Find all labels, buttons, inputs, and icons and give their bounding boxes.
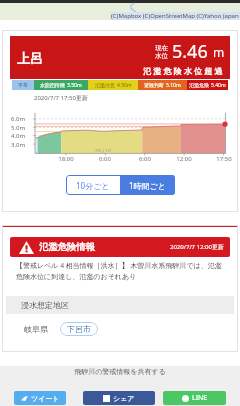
staticText: 2020/7/7 12:00更新 xyxy=(170,243,224,251)
staticText: 5.0m xyxy=(11,124,26,132)
staticText: 飛騨川の警戒情報を共有する xyxy=(0,367,240,376)
staticText: 平常 xyxy=(18,82,28,88)
staticText: 10分ごと xyxy=(76,180,110,191)
staticText: LINE xyxy=(192,393,208,403)
staticText: 下呂市 xyxy=(67,324,91,334)
staticText: 17:50 xyxy=(214,155,234,163)
staticText: 5.10m xyxy=(166,82,181,89)
staticText: 6.0m xyxy=(11,115,26,123)
staticText: 【警戒レベル４相当情報［洪水］】 木曽川水系飛騨川では、氾濫危険水位に到達し、氾… xyxy=(16,261,224,281)
staticText: 現在 xyxy=(155,44,168,52)
staticText: 18:00 xyxy=(56,155,76,163)
staticText: 12:00 xyxy=(174,155,194,163)
staticText: 氾濫危険情報 xyxy=(39,241,95,253)
staticText: 岐阜県 xyxy=(24,324,48,334)
button[interactable]: 10分ごと xyxy=(66,175,120,195)
staticText: 1時間ごと xyxy=(129,180,166,191)
staticText: 0:00 xyxy=(95,155,115,163)
staticText: 5.40m xyxy=(211,82,226,89)
staticText: 4.50m xyxy=(117,82,132,89)
staticText: 4.0m xyxy=(11,132,26,140)
button[interactable]: ツイート xyxy=(14,391,66,405)
staticText: 水防団待機 xyxy=(40,82,65,88)
button[interactable]: 氾濫危険情報 xyxy=(10,237,230,257)
button[interactable]: 1時間ごと xyxy=(120,175,175,195)
staticText: 水位 xyxy=(155,52,168,60)
staticText: 5.46 xyxy=(172,39,208,64)
staticText: ツイート xyxy=(31,394,60,403)
staticText: 氾濫危険 xyxy=(189,82,209,88)
staticText: 上呂 xyxy=(17,50,43,66)
button[interactable]: LINE xyxy=(163,391,226,405)
staticText: 6:00 xyxy=(135,155,155,163)
staticText: 氾濫危険水位超過 xyxy=(143,66,225,76)
staticText: シェア xyxy=(113,394,135,403)
button[interactable]: 下呂市 xyxy=(60,322,98,336)
staticText: 避難判断 xyxy=(144,82,164,88)
button[interactable]: シェア xyxy=(83,391,155,405)
staticText: 氾濫注意 xyxy=(95,82,115,88)
staticText: (C)Mapbox (C)OpenStreetMap (C)Yahoo Japa… xyxy=(111,12,239,20)
staticText: 7/6 | 7/7 xyxy=(95,148,112,153)
staticText: m xyxy=(213,44,225,60)
staticText: 浸水想定地区 xyxy=(21,300,69,310)
staticText: 3.50m xyxy=(67,82,82,89)
staticText: 2020/7/7 17:50更新 xyxy=(34,94,88,102)
staticText: 3.0m xyxy=(11,141,26,149)
